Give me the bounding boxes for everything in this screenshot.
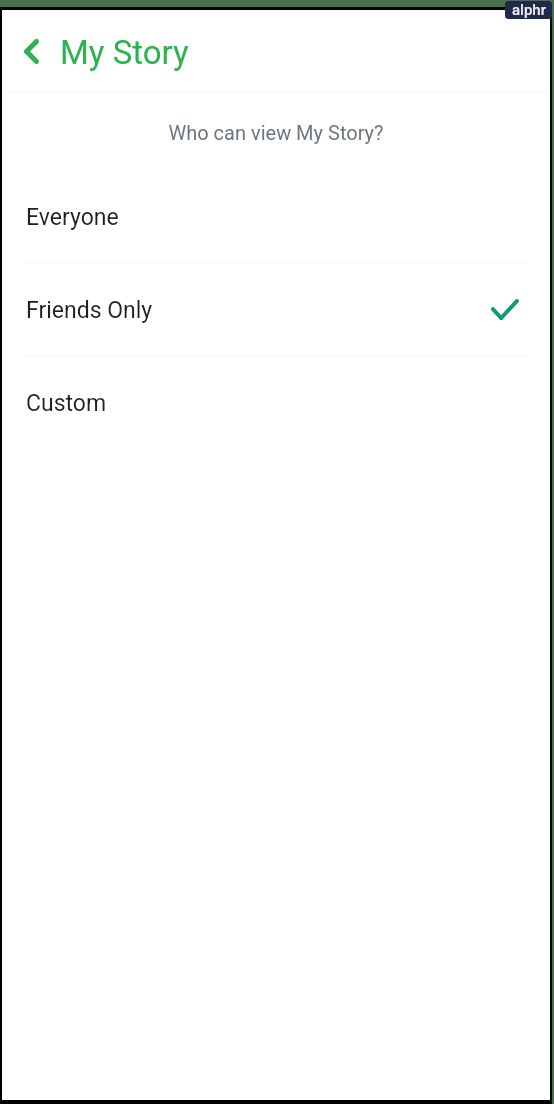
staticText: Friends Only	[26, 297, 153, 324]
button[interactable]: Everyone	[2, 171, 550, 263]
button[interactable]: Custom	[2, 357, 550, 449]
staticText: Everyone	[26, 204, 119, 231]
button[interactable]: Back	[8, 28, 54, 74]
staticText: My Story	[60, 33, 189, 72]
staticText: alphr	[512, 1, 546, 19]
other: Selected	[491, 299, 519, 320]
staticText: Who can view My Story?	[2, 121, 550, 144]
button[interactable]: Friends Only	[2, 264, 550, 356]
staticText: Custom	[26, 390, 107, 417]
